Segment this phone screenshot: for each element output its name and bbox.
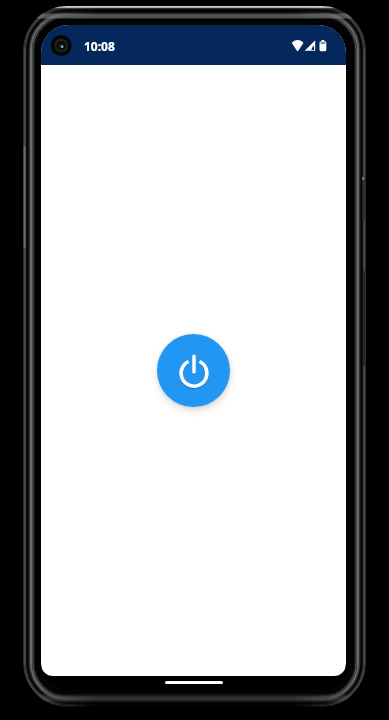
button[interactable]: Power (157, 334, 230, 407)
staticText: 10:08 (84, 38, 115, 54)
